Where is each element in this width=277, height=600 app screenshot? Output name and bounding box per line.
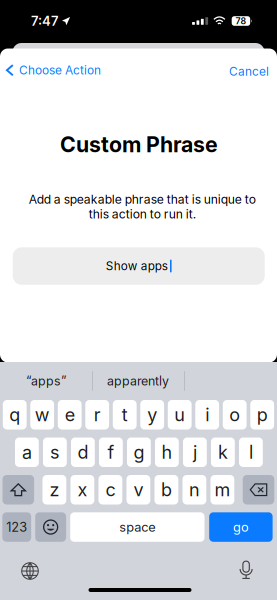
button[interactable]: apparently <box>92 364 184 398</box>
staticText: Show apps <box>106 259 168 273</box>
button[interactable]: Show apps <box>13 247 265 285</box>
button[interactable]: s <box>43 437 67 467</box>
button[interactable]: y <box>140 400 164 429</box>
staticText: 7:47 <box>31 13 59 29</box>
staticText: y <box>147 404 157 426</box>
button[interactable]: q <box>3 400 27 429</box>
staticText: x <box>77 479 87 501</box>
button[interactable]: p <box>250 400 274 429</box>
staticText: s <box>50 441 60 463</box>
button[interactable]: x <box>70 475 94 504</box>
staticText: 78 <box>235 16 246 26</box>
button[interactable]: 123 <box>2 512 31 542</box>
button[interactable]: f <box>99 437 123 467</box>
staticText: t <box>122 404 128 426</box>
button[interactable]: e <box>58 400 82 429</box>
button[interactable]: l <box>239 437 263 467</box>
button[interactable]: Next keyboard <box>15 556 45 586</box>
button[interactable]: j <box>183 437 207 467</box>
button[interactable]: Emoji <box>35 512 66 542</box>
button[interactable]: z <box>42 475 66 504</box>
button[interactable]: d <box>71 437 95 467</box>
staticText: apparently <box>107 373 169 388</box>
staticText: p <box>257 404 268 426</box>
staticText: w <box>35 404 50 426</box>
staticText: k <box>218 441 228 463</box>
button[interactable]: h <box>155 437 179 467</box>
button[interactable]: a <box>15 437 39 467</box>
button[interactable]: “apps” <box>0 364 92 398</box>
staticText: i <box>205 404 209 426</box>
button[interactable]: m <box>210 475 234 504</box>
staticText: l <box>249 441 253 463</box>
button[interactable]: v <box>126 475 150 504</box>
staticText: u <box>174 404 185 426</box>
staticText: q <box>9 404 20 426</box>
button[interactable]: o <box>223 400 247 429</box>
staticText: m <box>214 479 230 501</box>
button[interactable]: Delete <box>243 475 274 504</box>
staticText: r <box>94 404 101 426</box>
staticText: j <box>193 441 197 463</box>
staticText: “apps” <box>26 373 66 388</box>
staticText: h <box>161 441 172 463</box>
staticText: n <box>189 479 200 501</box>
button[interactable]: i <box>195 400 219 429</box>
button[interactable]: Shift <box>2 475 34 504</box>
staticText: Add a speakable phrase that is unique to… <box>28 192 255 221</box>
button[interactable]: b <box>154 475 178 504</box>
staticText: 123 <box>6 519 27 535</box>
button[interactable]: r <box>85 400 109 429</box>
staticText: c <box>105 479 115 501</box>
staticText: Cancel <box>229 64 269 79</box>
staticText: d <box>77 441 88 463</box>
button[interactable]: u <box>168 400 192 429</box>
button[interactable]: t <box>113 400 137 429</box>
staticText: Choose Action <box>19 63 101 77</box>
staticText: a <box>22 441 32 463</box>
staticText: v <box>133 479 143 501</box>
staticText: e <box>65 404 75 426</box>
button[interactable]: w <box>30 400 54 429</box>
button[interactable]: Dictate <box>232 554 260 585</box>
button[interactable]: c <box>98 475 122 504</box>
staticText: f <box>107 441 114 463</box>
button[interactable]: space <box>70 512 204 542</box>
button[interactable]: k <box>211 437 235 467</box>
staticText: Custom Phrase <box>60 131 218 157</box>
staticText: g <box>133 441 144 463</box>
staticText: go <box>233 519 249 535</box>
button[interactable]: Choose Action <box>2 60 104 80</box>
button[interactable]: n <box>182 475 206 504</box>
staticText: z <box>49 479 59 501</box>
button[interactable]: g <box>127 437 151 467</box>
staticText: space <box>119 519 155 535</box>
staticText: b <box>161 479 172 501</box>
button[interactable]: Cancel <box>225 60 273 83</box>
button[interactable]: go <box>209 512 273 542</box>
staticText: o <box>229 404 240 426</box>
